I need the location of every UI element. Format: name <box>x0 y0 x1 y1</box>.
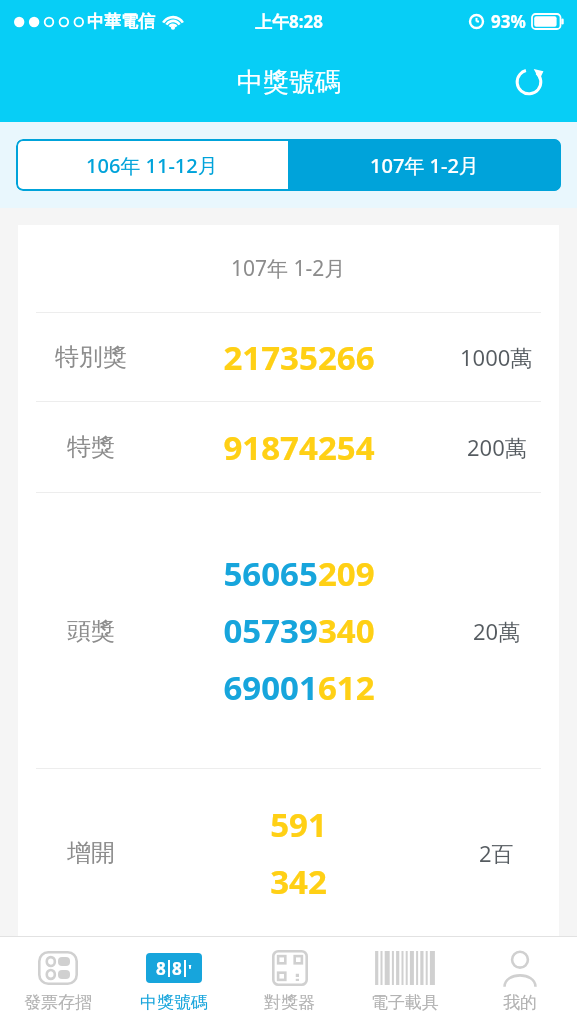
staticText: 106年 11-12月 <box>86 152 218 179</box>
staticText: 8 <box>172 957 182 980</box>
staticText: 591 <box>270 802 327 847</box>
button[interactable]: 我的 <box>462 937 577 1024</box>
button[interactable]: 電子載具 <box>347 937 462 1024</box>
staticText: 2百 <box>479 838 514 868</box>
staticText: 特別獎 <box>55 342 127 372</box>
button[interactable]: 8 <box>116 937 232 1024</box>
staticText: 342 <box>270 859 327 904</box>
staticText: 對獎器 <box>264 992 315 1013</box>
staticText: 頭獎 <box>67 616 115 646</box>
staticText: 上午8:28 <box>255 10 323 33</box>
button[interactable]: 發票存摺 <box>0 937 116 1024</box>
staticText: ' <box>188 959 192 979</box>
staticText: 69001612 <box>223 665 375 710</box>
button[interactable]: 107年 1-2月 <box>288 139 561 191</box>
staticText: 我的 <box>503 992 537 1013</box>
staticText: 107年 1-2月 <box>231 254 346 283</box>
staticText: 91874254 <box>223 425 375 470</box>
button[interactable]: Refresh <box>505 58 553 106</box>
button[interactable]: 對獎器 <box>232 937 347 1024</box>
staticText: 107年 1-2月 <box>370 152 479 179</box>
staticText: 中華電信 <box>87 11 155 32</box>
staticText: 21735266 <box>223 335 375 380</box>
staticText: 20萬 <box>473 616 521 646</box>
staticText: 93% <box>491 10 526 33</box>
button[interactable]: 106年 11-12月 <box>16 139 288 191</box>
staticText: 200萬 <box>467 432 527 462</box>
staticText: 05739340 <box>223 608 375 653</box>
staticText: 發票存摺 <box>24 992 92 1013</box>
staticText: 中獎號碼 <box>237 66 341 99</box>
staticText: 8 <box>156 957 166 980</box>
staticText: 增開 <box>67 838 115 868</box>
staticText: 中獎號碼 <box>140 992 208 1013</box>
staticText: 56065209 <box>223 551 375 596</box>
staticText: 1000萬 <box>460 342 533 372</box>
staticText: 特獎 <box>67 432 115 462</box>
staticText: 電子載具 <box>371 992 439 1013</box>
